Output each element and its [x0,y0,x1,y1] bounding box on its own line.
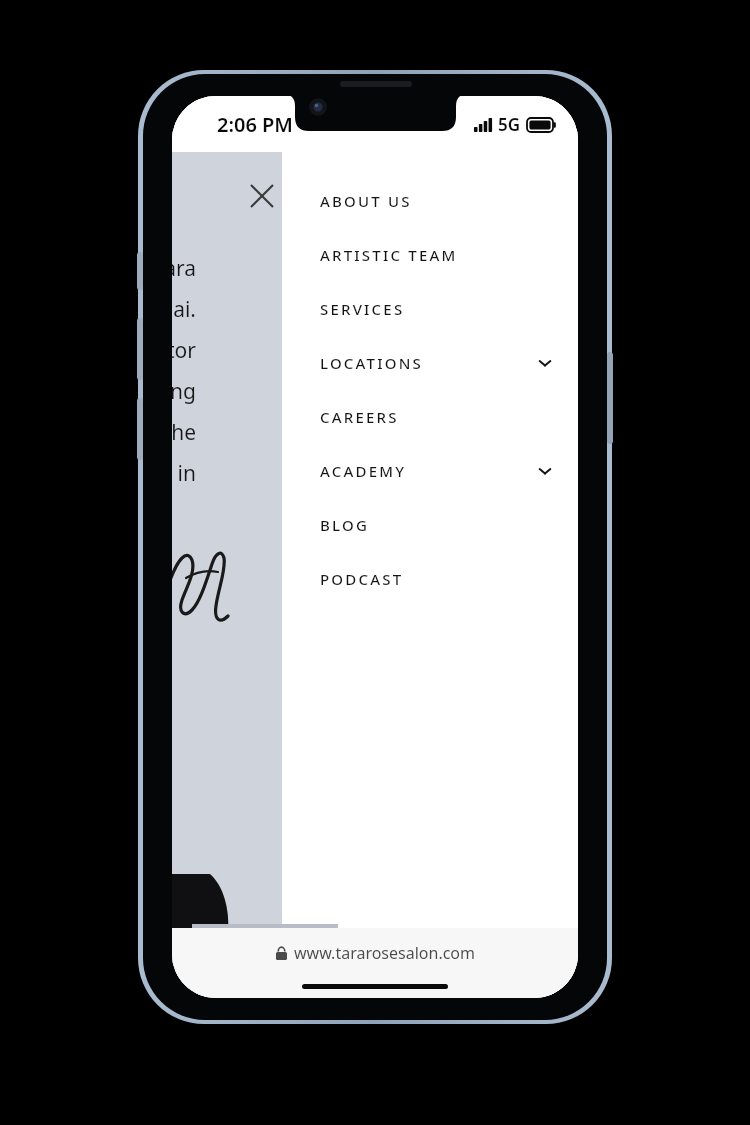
button[interactable]: ARTISTIC TEAM [320,228,564,282]
staticText: PODCAST [320,569,404,589]
staticText: s Director [172,336,196,365]
button[interactable]: ABOUT US [320,174,564,228]
button[interactable]: LOCATIONS [320,336,564,390]
staticText: its kind in [172,459,196,488]
staticText: rm—the [172,418,196,447]
staticText: SERVICES [320,299,405,319]
staticText: CAREERS [320,407,399,427]
staticText: www.tararosesalon.com [294,942,475,964]
button[interactable]: SERVICES [320,282,564,336]
staticText: LOCATIONS [320,353,423,373]
button[interactable]: PODCAST [320,552,564,606]
button[interactable]: ACADEMY [320,444,564,498]
button[interactable]: Language » [192,924,338,968]
staticText: Language » [216,935,315,958]
staticText: of the Tara [172,254,196,283]
staticText: ACADEMY [320,461,407,481]
staticText: 2:06 PM [217,111,293,138]
staticText: BLOG [320,515,369,535]
staticText: ABOUT US [320,191,412,211]
button[interactable]: BLOG [320,498,564,552]
staticText: ARTISTIC TEAM [320,245,458,265]
staticText: and Dubai. [172,295,196,324]
button[interactable]: Close menu [240,174,284,218]
staticText: s working [172,377,196,406]
button[interactable]: CAREERS [320,390,564,444]
staticText: 5G [498,113,521,136]
button[interactable]: www.tararosesalon.com [276,942,475,964]
